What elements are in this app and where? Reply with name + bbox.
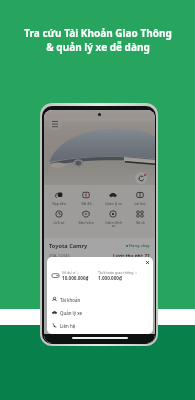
staticText: Lịch sử [53,220,65,225]
staticText: Liên hệ [60,323,76,329]
staticText: 30A-12345 [49,253,70,259]
staticText: & quản lý xe dễ dàng [46,40,150,54]
button[interactable]: Bãi đỗ [74,191,98,206]
button[interactable]: Giám định xe [101,210,125,228]
staticText: Tài khoản giao thông [98,270,134,275]
staticText: Tất cả [135,220,145,225]
staticText: Bảo hiểm [78,220,94,225]
staticText: Lái thử [134,201,146,206]
staticText: Lượt thu phí: 22 [113,253,150,259]
staticText: Giám định xe [105,220,122,228]
staticText: Quản lý xe [105,201,122,206]
button[interactable]: Toyota Camry [49,240,150,251]
staticText: Bãi đỗ [81,201,92,206]
staticText: Số dư ví [62,270,76,275]
staticText: Toyota Camry [49,242,88,250]
button[interactable]: Lịch sử [47,210,71,225]
button[interactable]: Refresh [135,172,147,184]
staticText: 10.000.000₫ [62,275,89,281]
staticText: Quản lý xe [60,310,83,316]
staticText: Nạp tiền [52,201,66,206]
staticText: Đang chạy [129,243,150,249]
staticText: 1.000.000₫ [98,275,122,281]
button[interactable]: Liên hệ [52,319,153,332]
button[interactable]: Bảo hiểm [74,210,98,225]
button[interactable]: Menu [49,118,61,130]
button[interactable]: Nạp tiền [47,191,71,206]
button[interactable]: Tất cả [128,210,152,225]
button[interactable]: Lái thử [128,191,152,206]
staticText: Tra cứu Tài Khoản Giao Thông [24,26,172,40]
button[interactable]: Quản lý xe [101,191,125,206]
button[interactable]: Close [144,259,151,266]
button[interactable]: Tài khoản [52,293,153,306]
button[interactable]: Quản lý xe [52,306,153,319]
staticText: Tài khoản [60,297,81,303]
